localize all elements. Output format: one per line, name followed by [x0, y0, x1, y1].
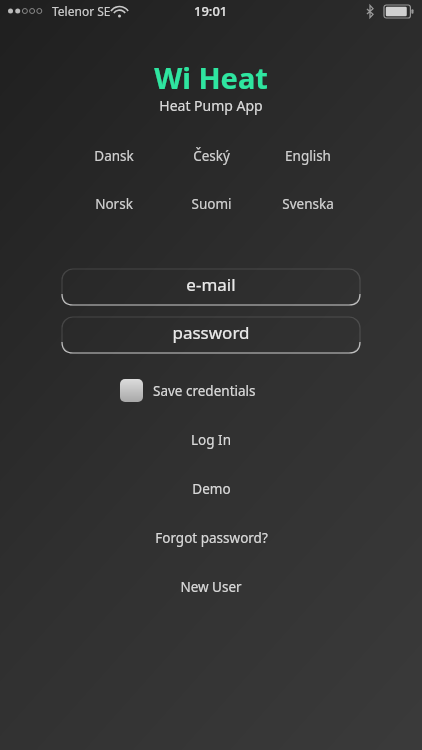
button[interactable]: New User — [0, 576, 422, 597]
staticText: password — [172, 321, 250, 344]
button[interactable]: e-mail — [62, 269, 360, 305]
staticText: Telenor SE — [52, 3, 111, 19]
button[interactable]: Norsk — [78, 193, 150, 214]
staticText: Forgot password? — [155, 529, 268, 547]
staticText: 19:01 — [194, 2, 228, 20]
staticText: Dansk — [94, 147, 134, 165]
staticText: Save credentials — [153, 382, 256, 400]
staticText: Log In — [191, 431, 231, 449]
staticText: Český — [193, 147, 230, 165]
other: Battery — [384, 5, 414, 18]
button[interactable]: English — [272, 145, 344, 166]
button[interactable]: Český — [175, 145, 247, 166]
staticText: Wi Heat — [0, 58, 422, 97]
staticText: English — [285, 147, 331, 165]
staticText: Demo — [192, 480, 231, 498]
button[interactable]: Demo — [0, 478, 422, 499]
staticText: Norsk — [95, 195, 133, 213]
staticText: Svenska — [282, 195, 334, 213]
staticText: New User — [180, 578, 242, 596]
staticText: Suomi — [191, 195, 232, 213]
button[interactable]: Log In — [0, 429, 422, 450]
other: Bluetooth — [366, 5, 374, 18]
staticText: Heat Pump App — [0, 96, 422, 115]
button[interactable]: password — [62, 317, 360, 353]
button[interactable]: Suomi — [175, 193, 247, 214]
button[interactable]: Dansk — [78, 145, 150, 166]
button[interactable]: Save credentials — [120, 379, 302, 402]
button[interactable]: Forgot password? — [0, 527, 422, 548]
button[interactable]: Svenska — [272, 193, 344, 214]
staticText: e-mail — [186, 273, 236, 296]
